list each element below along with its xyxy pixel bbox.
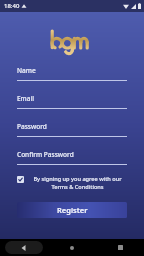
staticText: Password — [17, 122, 47, 131]
button[interactable]: Home — [48, 239, 96, 256]
staticText: Name — [17, 66, 36, 75]
button[interactable]: Back — [0, 239, 48, 256]
staticText: Email — [17, 94, 35, 103]
button[interactable]: Confirm Password — [17, 150, 127, 165]
button[interactable]: Register — [17, 202, 127, 218]
staticText: Register — [57, 205, 88, 215]
button[interactable]: Email — [17, 94, 127, 109]
staticText: By signing up you agree with our Terms &… — [28, 175, 127, 191]
button[interactable]: By signing up you agree with our Terms &… — [17, 175, 127, 191]
button[interactable]: Password — [17, 122, 127, 137]
button[interactable]: Name — [17, 66, 127, 81]
staticText: Confirm Password — [17, 150, 74, 159]
staticText: 18:40 — [4, 2, 20, 10]
button[interactable]: Recent apps — [96, 239, 144, 256]
